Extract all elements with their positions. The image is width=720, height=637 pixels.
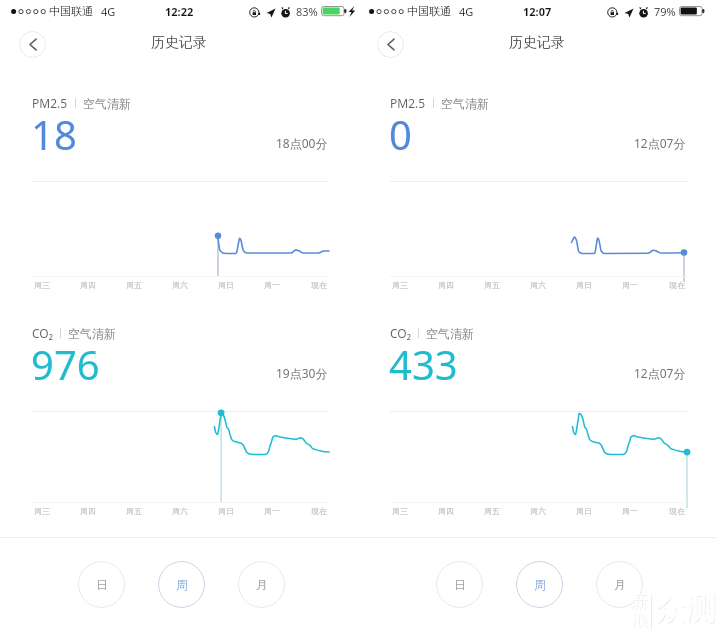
staticText: 空气清新 [83, 96, 131, 111]
staticText: PM2.5 [390, 95, 426, 111]
staticText: 周一 [622, 506, 638, 516]
button[interactable]: 周 [516, 561, 563, 608]
staticText: 12:07 [523, 4, 552, 19]
staticText: 新 [631, 591, 648, 612]
staticText: 周 [176, 577, 188, 592]
staticText: 浪 [631, 609, 648, 630]
staticText: 周六 [530, 280, 546, 290]
staticText: 18 [31, 107, 77, 161]
staticText: 976 [31, 337, 100, 391]
staticText: 现在 [311, 280, 327, 290]
staticText: 周三 [34, 280, 50, 290]
staticText: 月 [614, 577, 626, 592]
staticText: 周日 [576, 280, 592, 290]
staticText: 空气清新 [441, 96, 489, 111]
button[interactable]: 日 [78, 561, 125, 608]
button[interactable]: Back [19, 31, 46, 58]
button[interactable]: 周 [158, 561, 205, 608]
staticText: 12点07分 [634, 365, 686, 381]
staticText: 12:22 [165, 4, 194, 19]
button[interactable]: 月 [596, 561, 643, 608]
staticText: 新 [632, 592, 649, 613]
staticText: 周六 [172, 280, 188, 290]
staticText: 周五 [484, 506, 500, 516]
staticText: 浪 [632, 610, 649, 631]
staticText: 周三 [34, 506, 50, 516]
staticText: 周 [534, 577, 546, 592]
staticText: 12点07分 [634, 135, 686, 151]
staticText: 空气清新 [426, 326, 474, 341]
staticText: 现在 [311, 506, 327, 516]
staticText: 周三 [392, 280, 408, 290]
staticText: 周日 [218, 506, 234, 516]
staticText: 周五 [126, 280, 142, 290]
staticText: 周五 [126, 506, 142, 516]
staticText: 19点30分 [276, 365, 328, 381]
staticText: 历史记录 [509, 34, 565, 52]
staticText: 历史记录 [151, 34, 207, 52]
staticText: 周日 [576, 506, 592, 516]
staticText: 众测 [656, 590, 718, 629]
staticText: 周三 [392, 506, 408, 516]
button[interactable]: 日 [436, 561, 483, 608]
staticText: 中国联通 [407, 4, 451, 18]
staticText: 周五 [484, 280, 500, 290]
staticText: 周日 [218, 280, 234, 290]
staticText: 周六 [530, 506, 546, 516]
staticText: 0 [389, 107, 412, 161]
staticText: 周一 [264, 506, 280, 516]
button[interactable]: 月 [238, 561, 285, 608]
staticText: 日 [96, 577, 108, 592]
staticText: 周四 [438, 280, 454, 290]
staticText: 周四 [438, 506, 454, 516]
staticText: 众测 [655, 589, 717, 628]
staticText: 空气清新 [68, 326, 116, 341]
staticText: 月 [256, 577, 268, 592]
staticText: PM2.5 [32, 95, 68, 111]
staticText: 83% [296, 4, 318, 19]
button[interactable]: Back [377, 31, 404, 58]
staticText: 79% [654, 4, 676, 19]
staticText: 周一 [264, 280, 280, 290]
staticText: 周六 [172, 506, 188, 516]
staticText: 中国联通 [49, 4, 93, 18]
staticText: CO₂ [390, 325, 411, 341]
staticText: 周四 [80, 506, 96, 516]
staticText: 周四 [80, 280, 96, 290]
staticText: 18点00分 [276, 135, 328, 151]
staticText: 4G [101, 4, 116, 19]
staticText: 433 [389, 337, 458, 391]
staticText: 现在 [669, 506, 685, 516]
staticText: 现在 [669, 280, 685, 290]
staticText: 日 [454, 577, 466, 592]
staticText: 4G [459, 4, 474, 19]
staticText: CO₂ [32, 325, 53, 341]
staticText: 周一 [622, 280, 638, 290]
